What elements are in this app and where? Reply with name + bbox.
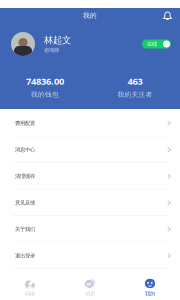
staticText: 463 — [127, 75, 142, 87]
button[interactable]: 463 — [90, 75, 180, 99]
button[interactable]: 问诊 — [0, 269, 60, 300]
staticText: 咨询师 — [44, 47, 59, 54]
staticText: 我的钱包 — [31, 90, 59, 99]
staticText: 在线 — [147, 41, 157, 47]
button[interactable]: 清理缓存 — [0, 163, 180, 189]
button[interactable]: 消息中心 — [0, 136, 180, 163]
button[interactable]: 关于我们 — [0, 216, 180, 242]
button[interactable]: 费用配置 — [0, 110, 180, 136]
button[interactable]: 意见反馈 — [0, 189, 180, 216]
button[interactable]: 74836.00 — [0, 75, 90, 99]
staticText: 退出登录 — [15, 252, 35, 259]
button[interactable]: 消息 — [60, 269, 120, 300]
staticText: 意见反馈 — [15, 199, 35, 206]
staticText: 我的关注者 — [117, 90, 152, 99]
button[interactable]: 退出登录 — [0, 242, 180, 269]
staticText: 消息 — [85, 290, 95, 297]
staticText: 我的 — [145, 290, 155, 297]
staticText: 林起文 — [44, 34, 71, 46]
button[interactable]: 我的 — [120, 269, 180, 300]
staticText: 74836.00 — [26, 75, 64, 87]
staticText: 问诊 — [25, 290, 35, 297]
staticText: 我的 — [83, 11, 97, 20]
staticText: 消息中心 — [15, 146, 35, 153]
staticText: 清理缓存 — [15, 173, 35, 180]
button[interactable]: 在线 — [142, 39, 171, 48]
staticText: 关于我们 — [15, 226, 35, 233]
staticText: 费用配置 — [15, 120, 35, 127]
button[interactable]: Notifications — [160, 7, 175, 23]
